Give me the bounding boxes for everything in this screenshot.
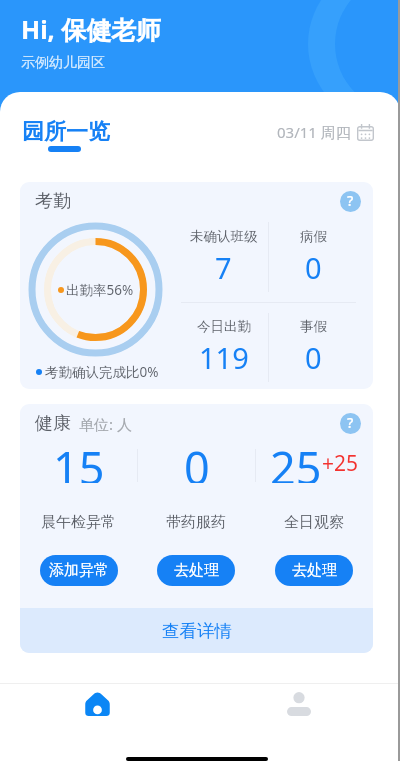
staticText: 健康 bbox=[35, 412, 71, 435]
staticText: 单位: 人 bbox=[79, 414, 132, 434]
button[interactable]: Profile bbox=[200, 684, 400, 757]
button[interactable]: Help bbox=[340, 413, 361, 434]
staticText: 119 bbox=[199, 338, 249, 377]
button[interactable]: Home bbox=[0, 684, 200, 757]
staticText: +25 bbox=[322, 449, 359, 478]
button[interactable]: 查看详情 bbox=[20, 608, 373, 653]
staticText: 25 bbox=[270, 437, 322, 483]
staticText: 考勤 bbox=[35, 190, 71, 213]
staticText: ? bbox=[347, 191, 354, 210]
staticText: 考勤确认完成比0% bbox=[45, 363, 159, 381]
staticText: 未确认班级 bbox=[190, 228, 258, 245]
button[interactable]: Help bbox=[340, 191, 361, 212]
button[interactable]: 去处理 bbox=[157, 555, 235, 586]
staticText: 查看详情 bbox=[162, 620, 232, 642]
button[interactable]: 03/11 周四 bbox=[277, 122, 374, 142]
staticText: 7 bbox=[215, 248, 232, 287]
staticText: 全日观察 bbox=[284, 513, 344, 532]
button[interactable]: 添加异常 bbox=[40, 555, 118, 586]
staticText: 添加异常 bbox=[49, 561, 109, 580]
staticText: 园所一览 bbox=[22, 118, 110, 146]
staticText: 病假 bbox=[300, 228, 327, 245]
staticText: 0 bbox=[305, 338, 322, 377]
staticText: 03/11 周四 bbox=[277, 122, 351, 142]
button[interactable]: 病假 bbox=[269, 212, 358, 302]
button[interactable]: 未确认班级 bbox=[179, 212, 268, 302]
staticText: Hi, 保健老师 bbox=[21, 12, 162, 46]
staticText: 晨午检异常 bbox=[41, 513, 116, 532]
other: Calendar bbox=[357, 124, 374, 141]
staticText: 15 bbox=[53, 437, 105, 483]
staticText: 0 bbox=[305, 248, 322, 287]
staticText: 示例幼儿园区 bbox=[21, 54, 105, 72]
staticText: 带药服药 bbox=[166, 513, 226, 532]
staticText: ? bbox=[347, 413, 354, 432]
staticText: 事假 bbox=[300, 318, 327, 335]
staticText: 去处理 bbox=[292, 561, 337, 580]
button[interactable]: 去处理 bbox=[275, 555, 353, 586]
staticText: 出勤率56% bbox=[66, 281, 134, 299]
staticText: 0 bbox=[184, 437, 210, 483]
staticText: 去处理 bbox=[174, 561, 219, 580]
button[interactable]: 今日出勤 bbox=[179, 303, 268, 389]
staticText: 今日出勤 bbox=[197, 318, 251, 335]
button[interactable]: 事假 bbox=[269, 303, 358, 389]
